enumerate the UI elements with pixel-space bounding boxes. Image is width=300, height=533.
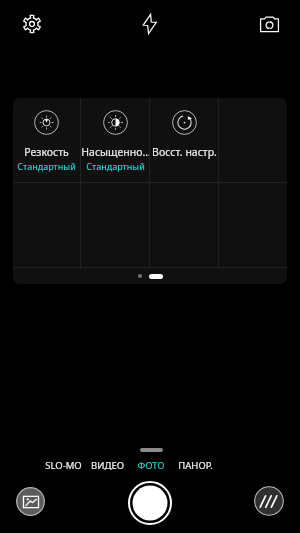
button[interactable]: ФОТО (129, 444, 173, 470)
button[interactable]: Восст. настр. (150, 98, 218, 182)
staticText: SLO-MO (45, 459, 82, 470)
button[interactable]: SLO-MO (41, 444, 85, 470)
button[interactable]: ВИДЕО (85, 444, 129, 470)
staticText: Стандартный (86, 160, 145, 172)
staticText: Стандартный (17, 160, 76, 172)
staticText: ПАНОР. (178, 459, 213, 470)
button[interactable]: Switch camera (254, 9, 284, 39)
button[interactable]: Settings (17, 9, 47, 39)
button[interactable]: Flash (135, 9, 165, 39)
staticText: ВИДЕО (91, 459, 124, 470)
button[interactable]: Gallery (16, 487, 45, 516)
button[interactable]: Shutter (128, 481, 172, 525)
button[interactable]: Насыщенно… (81, 98, 149, 182)
staticText: Восст. настр. (152, 145, 217, 159)
staticText: Резкость (24, 145, 69, 159)
button[interactable]: Filters (254, 486, 284, 516)
staticText: Насыщенно… (81, 145, 149, 159)
button[interactable]: ПАНОР. (173, 444, 217, 470)
button[interactable]: Резкость (13, 98, 80, 182)
staticText: ФОТО (137, 459, 165, 470)
